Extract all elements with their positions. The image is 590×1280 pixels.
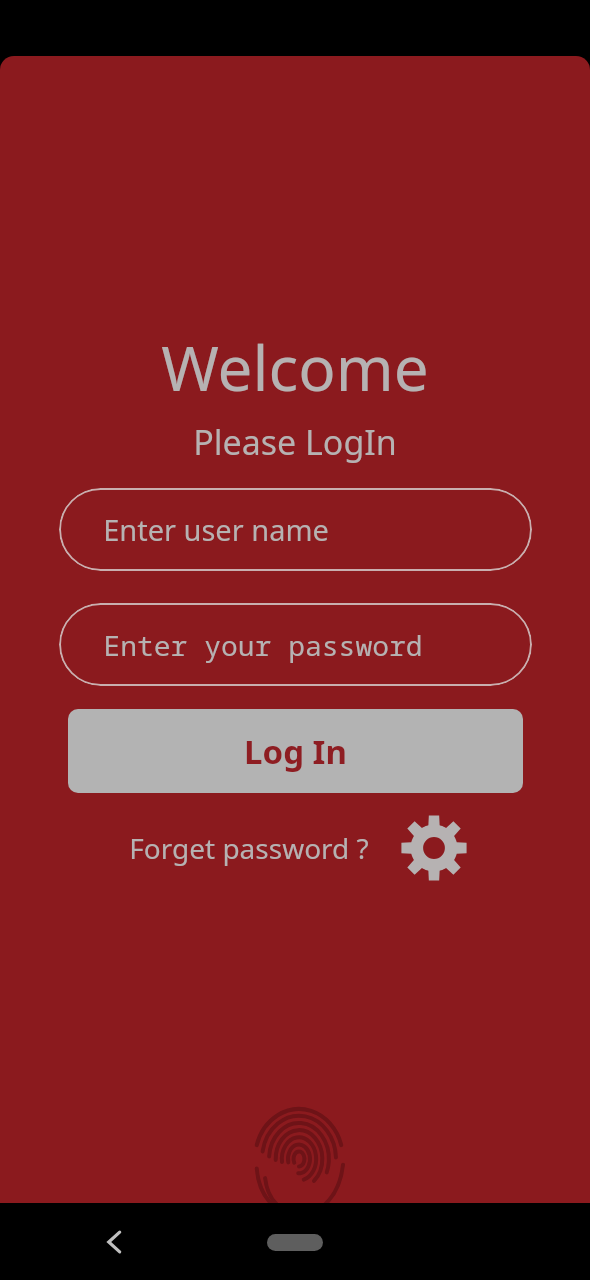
staticText: Log In (244, 729, 347, 774)
staticText: Please LogIn (193, 419, 397, 465)
staticText: Enter your password (103, 626, 423, 664)
button[interactable]: Enter your password (59, 603, 532, 686)
button[interactable]: Home (252, 1219, 338, 1265)
button[interactable]: Enter user name (59, 488, 532, 571)
staticText: Forget password ? (129, 829, 369, 867)
button[interactable]: Log In (68, 709, 523, 793)
button[interactable]: Settings (401, 815, 467, 881)
button[interactable]: Forget password ? (123, 823, 375, 873)
button[interactable]: Back (85, 1212, 145, 1272)
staticText: Welcome (161, 325, 429, 409)
staticText: Enter user name (103, 510, 329, 549)
